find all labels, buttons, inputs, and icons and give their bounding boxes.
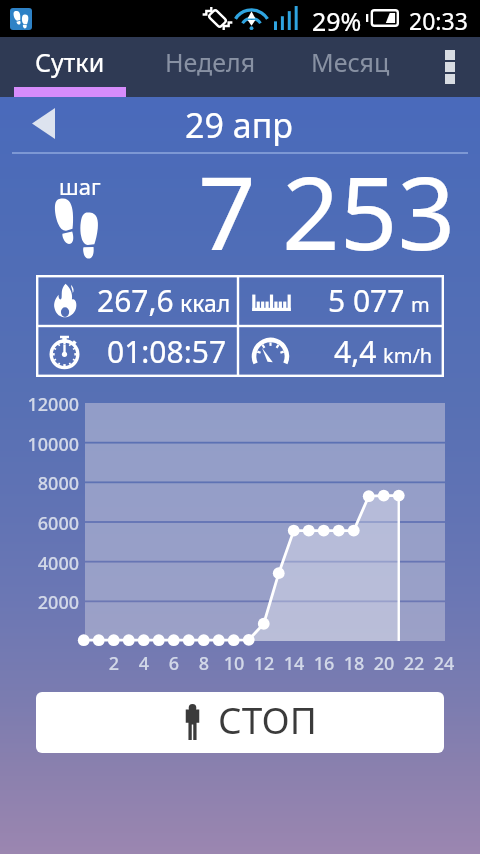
staticText: 4,4 <box>334 331 377 372</box>
button[interactable]: 5 077 <box>240 275 444 326</box>
staticText: шаг <box>59 171 101 201</box>
button[interactable]: 01:08:57 <box>36 326 238 377</box>
staticText: 267,6 <box>97 280 174 321</box>
staticText: 18 <box>334 651 374 676</box>
staticText: 7 253 <box>198 142 456 280</box>
staticText: 12 <box>244 651 284 676</box>
staticText: 24 <box>424 651 464 676</box>
staticText: Неделя <box>165 45 256 79</box>
staticText: 2 <box>94 651 134 676</box>
staticText: 6 <box>154 651 194 676</box>
staticText: 29% <box>312 4 362 38</box>
staticText: km/h <box>383 342 433 369</box>
button[interactable]: Месяц <box>280 37 420 87</box>
staticText: 20:33 <box>409 5 468 36</box>
button[interactable]: 267,6 <box>36 275 238 326</box>
staticText: 14 <box>274 651 314 676</box>
staticText: 10000 <box>0 432 79 457</box>
staticText: 5 077 <box>328 280 405 321</box>
staticText: 8 <box>184 651 224 676</box>
staticText: 16 <box>304 651 344 676</box>
staticText: 20 <box>364 651 404 676</box>
staticText: 4 <box>124 651 164 676</box>
button[interactable]: Previous day <box>22 103 64 143</box>
button[interactable]: Неделя <box>140 37 280 87</box>
staticText: 22 <box>394 651 434 676</box>
staticText: 01:08:57 <box>107 331 227 372</box>
staticText: 4000 <box>0 551 79 576</box>
staticText: m <box>411 291 430 318</box>
staticText: 12000 <box>0 392 79 417</box>
button[interactable]: Сутки <box>0 37 140 87</box>
button[interactable]: СТОП <box>36 692 444 753</box>
staticText: СТОП <box>218 694 317 744</box>
button[interactable]: 4,4 <box>240 326 444 377</box>
staticText: 10 <box>214 651 254 676</box>
staticText: Месяц <box>311 45 390 79</box>
button[interactable]: More options <box>420 37 480 97</box>
staticText: 2000 <box>0 590 79 615</box>
staticText: 8000 <box>0 471 79 496</box>
staticText: ккал <box>180 287 231 318</box>
staticText: 6000 <box>0 511 79 536</box>
staticText: 29 апр <box>0 102 479 148</box>
staticText: Сутки <box>35 45 105 79</box>
